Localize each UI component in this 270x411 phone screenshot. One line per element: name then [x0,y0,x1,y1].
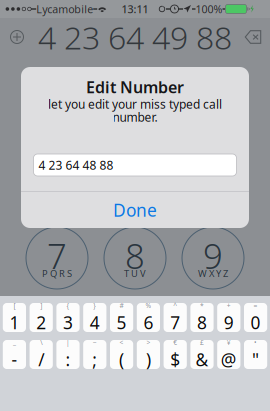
staticText: % [145,301,151,310]
staticText: 2 [36,311,46,334]
button[interactable]: # [110,303,133,332]
staticText: / [38,348,44,371]
staticText: ; [92,348,97,371]
staticText: 3 [63,311,73,334]
button[interactable]: 7 [18,227,96,289]
staticText: ^ [173,301,177,310]
staticText: | [66,338,70,347]
button[interactable]: # [174,305,252,367]
staticText: [ [13,301,15,310]
staticText: 5 [117,311,127,334]
staticText: { [66,301,69,310]
staticText: 8 [125,232,145,278]
staticText: ] [40,301,42,310]
staticText: ~ [93,338,97,347]
button[interactable]: } [83,303,106,332]
button[interactable]: [ [3,303,26,332]
staticText: $ [170,348,180,371]
staticText: 8 [197,311,207,334]
staticText: 7 [47,232,67,278]
button[interactable]: % [137,303,160,332]
button[interactable]: Done [21,192,249,228]
staticText: @ [221,348,237,371]
button[interactable]: + [217,303,240,332]
button[interactable]: ] [30,303,53,332]
staticText: & [195,348,208,371]
staticText: 4 23 64 49 88 [38,16,232,58]
button[interactable]: ^ [164,303,187,332]
button[interactable]: € [164,340,187,369]
button[interactable]: < [110,340,133,369]
button[interactable]: ¥ [217,340,240,369]
staticText: ( [119,348,124,371]
staticText: + [227,301,231,310]
staticText: Lycamobile [36,2,93,16]
button[interactable]: 0 [96,305,174,367]
staticText: 9 [224,311,234,334]
staticText: 100% [195,2,222,16]
button[interactable]: 9 [174,227,252,289]
staticText: \ [40,338,42,347]
button[interactable]: ∗ [18,305,96,367]
staticText: ¥ [227,338,231,347]
staticText: ) [146,348,151,371]
staticText: = [254,301,258,310]
staticText: " [252,348,259,371]
staticText: - [11,348,17,371]
staticText: Done [113,198,157,221]
staticText: 1 [9,311,19,334]
staticText: 7 [170,311,180,334]
staticText: # [120,301,124,310]
button[interactable]: £ [190,340,214,369]
button[interactable]: ~ [83,340,106,369]
staticText: 0 [251,311,261,334]
staticText: number. [112,109,157,125]
button[interactable]: > [137,340,160,369]
button[interactable]: _ [3,340,26,369]
staticText: £ [200,338,204,347]
staticText: T U V [124,267,146,280]
button[interactable]: = [244,303,267,332]
button[interactable]: * [190,303,214,332]
staticText: W X Y Z [198,267,228,280]
staticText: # [202,310,224,356]
button[interactable]: | [56,340,80,369]
button[interactable]: • [244,340,267,369]
staticText: _ [13,338,16,347]
button[interactable]: { [56,303,80,332]
staticText: < [120,338,124,347]
staticText: 9 [203,232,223,278]
staticText: 6 [143,311,153,334]
staticText: : [65,348,70,371]
staticText: ∗ [46,314,68,353]
staticText: € [173,338,177,347]
staticText: Edit Number [86,76,184,98]
button[interactable]: 8 [96,227,174,289]
staticText: P Q R S [42,267,72,280]
staticText: 4 23 64 48 88 [38,157,113,173]
staticText: • [254,338,257,347]
button[interactable]: Add to contacts [0,18,34,56]
button[interactable]: \ [30,340,53,369]
staticText: * [200,301,204,310]
staticText: + [132,345,137,358]
staticText: let you edit your miss typed call [48,96,222,112]
staticText: } [93,301,96,310]
staticText: > [146,338,150,347]
staticText: 13:11 [121,2,148,16]
button[interactable]: Delete [236,18,270,56]
staticText: 0 [125,310,145,356]
staticText: 4 [90,311,100,334]
